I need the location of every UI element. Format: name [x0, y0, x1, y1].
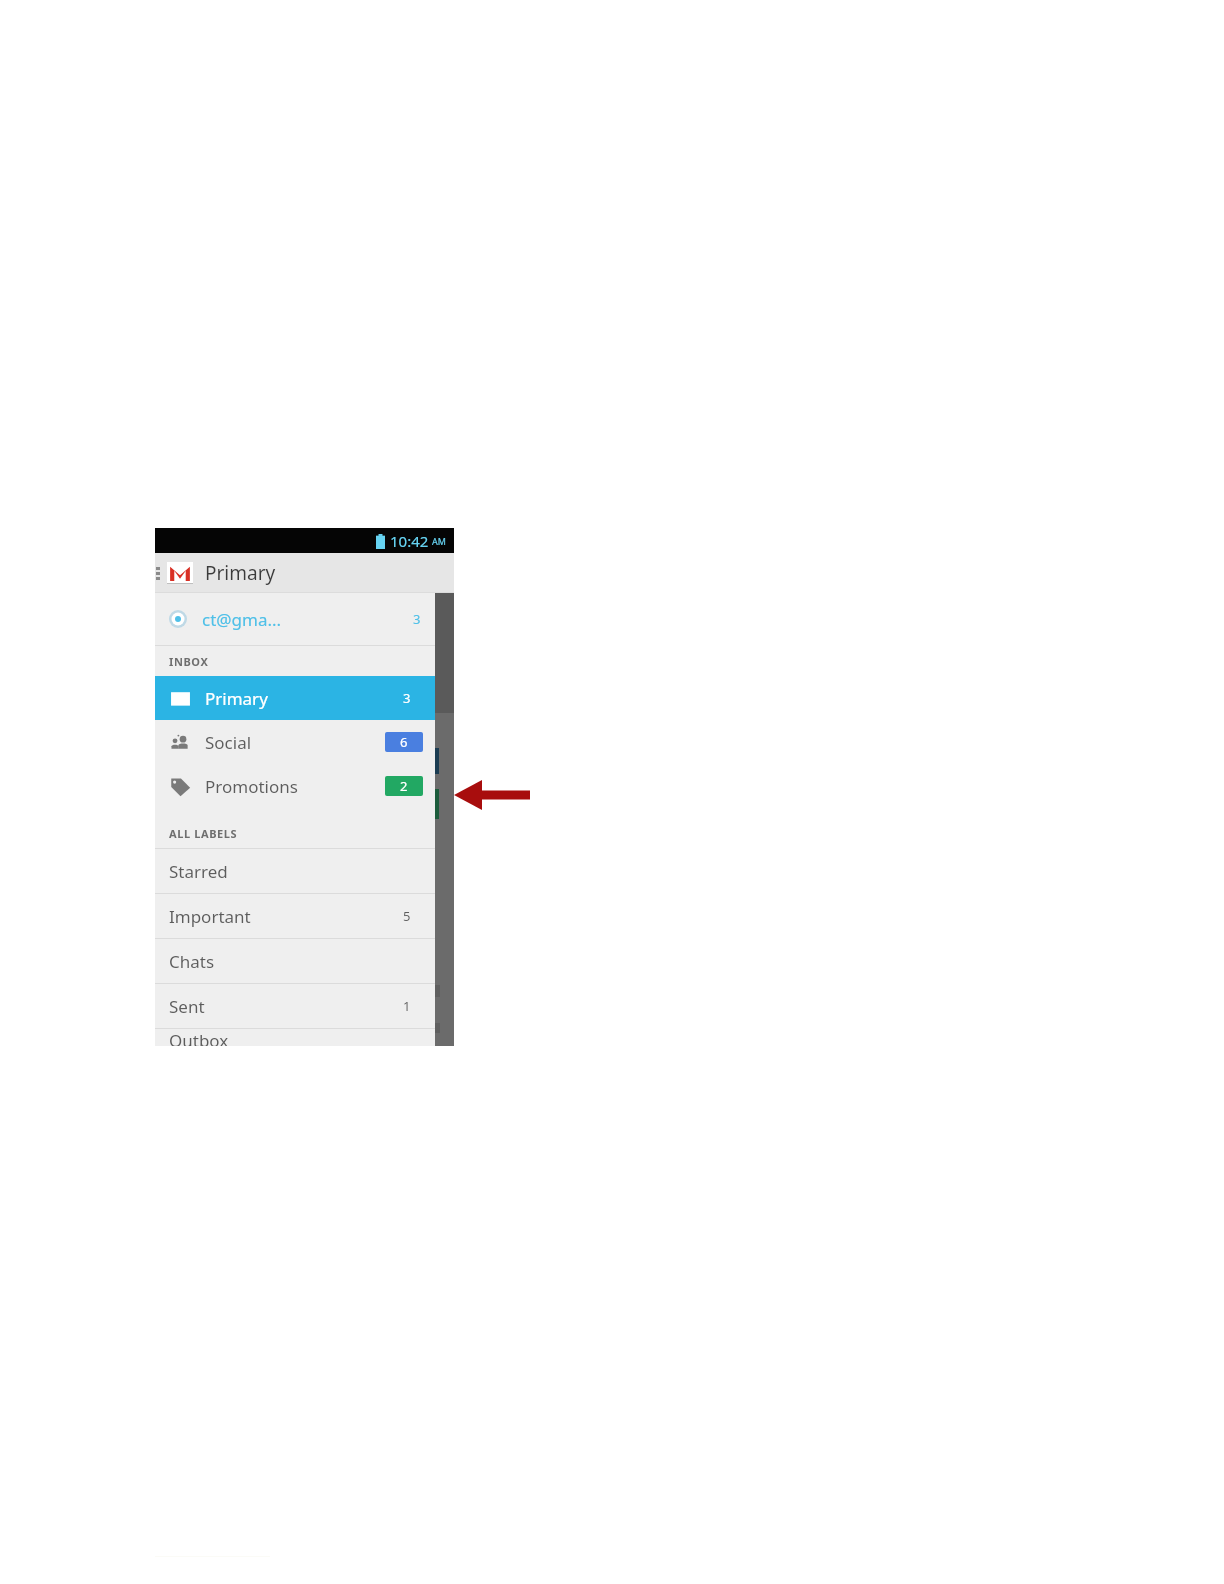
- staticText: Sent: [169, 995, 403, 1018]
- button[interactable]: ct@gma...: [155, 593, 435, 645]
- button[interactable]: Outbox: [155, 1029, 435, 1046]
- staticText: Primary: [205, 687, 403, 710]
- staticText: INBOX: [169, 654, 209, 669]
- other: Primary inbox: [170, 688, 191, 709]
- staticText: Starred: [169, 860, 411, 883]
- button[interactable]: Starred: [155, 849, 435, 893]
- staticText: ALL LABELS: [169, 826, 238, 841]
- staticText: 3: [403, 689, 411, 707]
- staticText: 5: [403, 907, 411, 925]
- staticText: ct@gma...: [202, 608, 413, 631]
- staticText: Important: [169, 905, 403, 928]
- button[interactable]: Social: [155, 720, 435, 764]
- staticText: 2: [400, 777, 408, 795]
- button[interactable]: Promotions: [155, 764, 435, 808]
- staticText: Outbox: [169, 1029, 411, 1046]
- staticText: 6: [400, 733, 408, 751]
- staticText: Promotions: [205, 775, 385, 798]
- staticText: 3: [413, 610, 421, 628]
- staticText: Chats: [169, 950, 411, 973]
- staticText: AM: [432, 535, 446, 547]
- button[interactable]: Primary: [167, 560, 276, 586]
- staticText: Social: [205, 731, 385, 754]
- button[interactable]: Sent: [155, 984, 435, 1028]
- staticText: 1: [403, 997, 411, 1015]
- button[interactable]: Primary inbox: [155, 676, 435, 720]
- other: Social: [170, 732, 191, 753]
- button[interactable]: Chats: [155, 939, 435, 983]
- staticText: 10:42: [390, 531, 429, 551]
- button[interactable]: Important: [155, 894, 435, 938]
- staticText: Primary: [205, 560, 276, 586]
- other: Promotions: [170, 776, 191, 797]
